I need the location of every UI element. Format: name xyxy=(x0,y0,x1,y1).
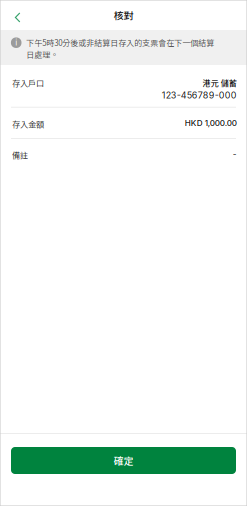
button[interactable]: Back xyxy=(0,0,30,30)
staticText: 備註 xyxy=(12,149,28,161)
staticText: i xyxy=(15,38,17,48)
staticText: 港元 儲蓄 xyxy=(203,77,237,89)
staticText: 123-456789-000 xyxy=(162,90,237,101)
staticText: 核對 xyxy=(113,8,133,22)
staticText: 確定 xyxy=(113,453,133,468)
staticText: - xyxy=(233,149,237,159)
staticText: 存入戶口 xyxy=(12,77,44,89)
staticText: 存入金額 xyxy=(12,118,44,130)
staticText: HKD 1,000.00 xyxy=(185,118,237,128)
button[interactable]: 確定 xyxy=(11,447,236,474)
staticText: 下午5時30分後或非結算日存入的支票會在下一個結算日處理。 xyxy=(26,37,214,60)
